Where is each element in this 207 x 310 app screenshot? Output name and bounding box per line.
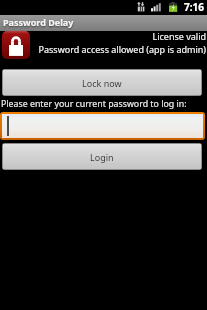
button[interactable]: Locked <box>2 31 30 59</box>
staticText: Password Delay <box>3 16 74 28</box>
button[interactable] <box>2 114 203 138</box>
staticText: Login <box>90 151 114 163</box>
staticText: Please enter your current password to lo… <box>1 98 187 110</box>
button[interactable]: Lock now <box>3 70 201 95</box>
staticText: Lock now <box>82 77 122 89</box>
button[interactable]: Login <box>3 144 201 169</box>
staticText: Password access allowed (app is admin) <box>38 43 206 55</box>
staticText: License valid <box>152 30 206 42</box>
staticText: 7:16 <box>184 0 204 14</box>
